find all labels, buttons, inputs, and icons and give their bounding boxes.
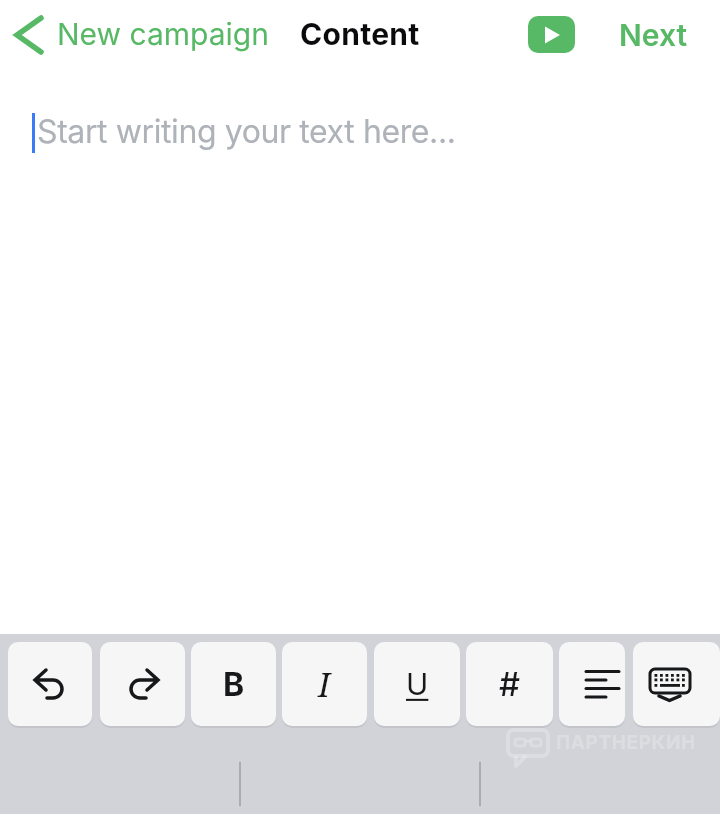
button[interactable]: I <box>282 642 367 726</box>
button[interactable]: New campaign <box>14 14 269 54</box>
button[interactable] <box>633 642 720 726</box>
staticText: Content <box>300 16 420 52</box>
staticText: U <box>406 666 429 702</box>
button[interactable] <box>8 642 92 726</box>
staticText: ПАРТНЕРКИН <box>556 731 696 754</box>
button[interactable]: U <box>374 642 460 726</box>
button[interactable]: B <box>191 642 276 726</box>
staticText: B <box>223 665 245 704</box>
button[interactable] <box>100 642 185 726</box>
button[interactable]: # <box>466 642 553 726</box>
staticText: # <box>499 664 521 704</box>
button[interactable]: Next <box>619 17 688 53</box>
staticText: Start writing your text here... <box>37 112 456 151</box>
button[interactable] <box>528 16 575 53</box>
button[interactable] <box>559 642 625 726</box>
staticText: New campaign <box>57 16 269 52</box>
staticText: I <box>318 662 331 707</box>
